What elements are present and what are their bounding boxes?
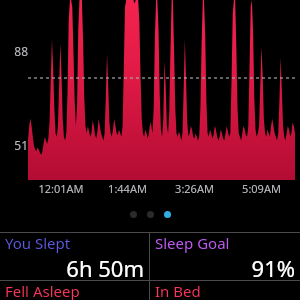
staticText: In Bed [155,281,295,300]
staticText: 6h 50m [5,253,144,280]
staticText: 12:01AM [28,181,94,196]
button[interactable]: Sleep Goal [150,233,300,280]
staticText: 5:09AM [228,181,295,196]
staticText: 91% [155,253,295,280]
staticText: 88 [6,43,28,59]
button[interactable]: Page indicator [130,211,137,218]
staticText: 1:44AM [94,181,161,196]
button[interactable]: Fell Asleep [0,281,149,300]
staticText: You Slept [5,233,144,253]
button[interactable]: You Slept [0,233,149,280]
staticText: Fell Asleep [5,281,144,300]
staticText: 3:26AM [161,181,228,196]
button[interactable]: Page indicator [164,211,171,218]
button[interactable]: In Bed [150,281,300,300]
button[interactable]: Page indicator [147,211,154,218]
staticText: 51 [6,137,28,153]
staticText: Sleep Goal [155,233,295,253]
